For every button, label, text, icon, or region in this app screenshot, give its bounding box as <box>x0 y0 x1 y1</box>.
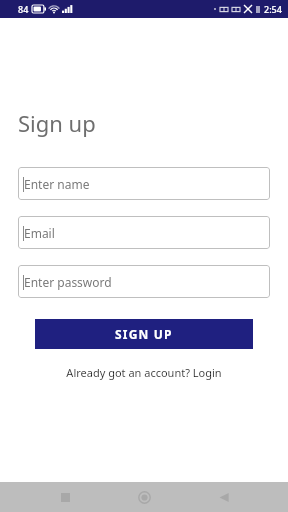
button[interactable]: Already got an account? Login <box>60 363 228 382</box>
staticText: Sign up <box>18 108 96 138</box>
staticText: 2:54 <box>264 3 282 15</box>
staticText: Email <box>24 225 55 241</box>
button[interactable]: SIGN UP <box>35 319 253 349</box>
button[interactable]: Email <box>18 216 270 249</box>
button[interactable]: Back <box>209 482 239 512</box>
staticText: Enter password <box>24 274 112 290</box>
staticText: SIGN UP <box>115 326 173 342</box>
staticText: 84 <box>18 3 29 15</box>
button[interactable]: Enter password <box>18 265 270 298</box>
button[interactable]: Recent apps <box>50 482 80 512</box>
staticText: Enter name <box>24 176 90 192</box>
button[interactable]: Enter name <box>18 167 270 200</box>
button[interactable]: Home <box>129 482 159 512</box>
